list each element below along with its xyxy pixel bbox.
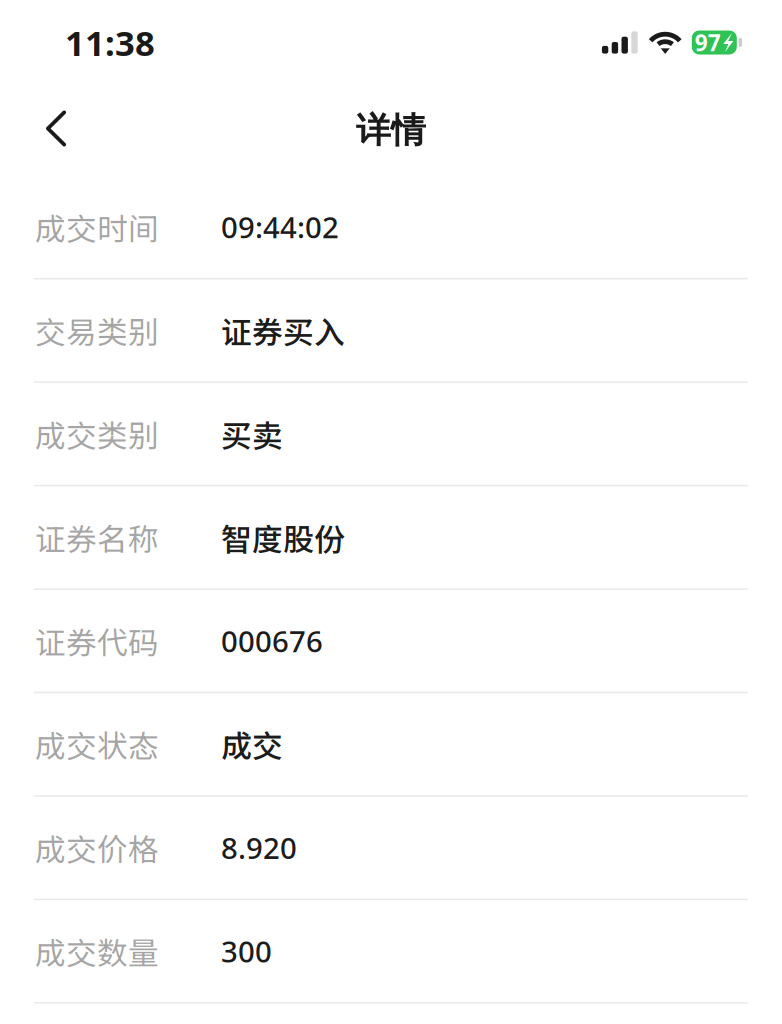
staticText: 智度股份	[221, 515, 345, 559]
staticText: 成交价格	[35, 825, 159, 870]
staticText: 300	[221, 932, 272, 971]
staticText: 000676	[221, 621, 323, 660]
staticText: 证券名称	[35, 515, 159, 559]
staticText: 交易类别	[35, 308, 159, 353]
staticText: 买卖	[221, 412, 283, 456]
staticText: 成交时间	[35, 205, 159, 249]
staticText: 成交	[221, 722, 283, 766]
staticText: 97	[695, 27, 721, 57]
staticText: 8.920	[221, 828, 297, 867]
staticText: 证券代码	[35, 619, 159, 663]
staticText: 成交状态	[35, 722, 159, 766]
staticText: 09:44:02	[221, 207, 339, 246]
staticText: 详情	[356, 109, 426, 152]
staticText: 证券买入	[221, 308, 345, 353]
button[interactable]: Back	[22, 94, 90, 166]
staticText: 成交数量	[35, 929, 159, 973]
staticText: 成交类别	[35, 412, 159, 456]
staticText: 11:38	[65, 19, 155, 65]
